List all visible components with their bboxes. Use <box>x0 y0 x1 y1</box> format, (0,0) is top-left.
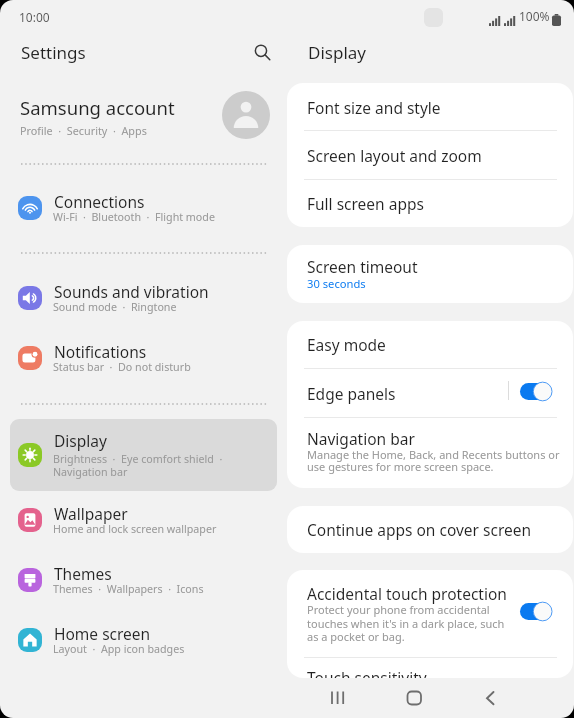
staticText: Wi-Fi · Bluetooth · Flight mode <box>53 210 215 225</box>
button[interactable]: Easy mode <box>287 321 573 368</box>
staticText: Settings <box>21 41 86 64</box>
staticText: Touch sensitivity <box>307 667 427 678</box>
staticText: Accidental touch protection <box>307 583 507 604</box>
button[interactable]: Font size and style <box>287 83 573 131</box>
staticText: Home screen <box>54 623 151 644</box>
button[interactable]: Search <box>244 34 280 70</box>
button[interactable]: Screen layout and zoom <box>287 131 573 179</box>
staticText: Display <box>308 41 366 64</box>
staticText: Full screen apps <box>307 193 424 214</box>
button[interactable]: Touch sensitivity <box>287 657 573 678</box>
staticText: Protect your phone from accidental touch… <box>307 602 505 644</box>
button[interactable]: Notifications <box>10 334 277 383</box>
staticText: Brightness · Eye comfort shield · Naviga… <box>53 452 223 479</box>
staticText: Screen timeout <box>307 256 418 277</box>
button[interactable]: Screen timeout <box>287 245 573 303</box>
button[interactable]: Accidental touch protection <box>287 570 573 657</box>
staticText: Sound mode · Ringtone <box>53 300 177 315</box>
button[interactable]: Themes <box>10 556 277 605</box>
button[interactable]: Display <box>10 419 277 491</box>
staticText: Wallpaper <box>54 503 128 524</box>
staticText: 30 seconds <box>307 276 366 291</box>
staticText: Navigation bar <box>307 428 415 449</box>
staticText: Status bar · Do not disturb <box>53 360 191 375</box>
staticText: Font size and style <box>307 97 441 118</box>
button[interactable]: Toggle <box>520 603 551 620</box>
staticText: 10:00 <box>19 9 50 25</box>
button[interactable]: Samsung account <box>10 85 277 145</box>
button[interactable]: Back <box>468 676 512 718</box>
staticText: Profile · Security · Apps <box>20 123 147 138</box>
staticText: Layout · App icon badges <box>53 642 185 657</box>
staticText: Easy mode <box>307 334 386 355</box>
staticText: Sounds and vibration <box>54 281 209 302</box>
button[interactable]: Navigation bar <box>287 417 573 488</box>
button[interactable]: Edge panels <box>287 368 573 417</box>
button[interactable]: Continue apps on cover screen <box>287 506 573 553</box>
staticText: Edge panels <box>307 383 396 404</box>
staticText: Themes <box>54 563 112 584</box>
button[interactable]: Wallpaper <box>10 496 277 545</box>
button[interactable]: Home <box>392 676 436 718</box>
button[interactable]: Sounds and vibration <box>10 274 277 323</box>
staticText: Screen layout and zoom <box>307 145 482 166</box>
staticText: Manage the Home, Back, and Recents butto… <box>307 447 560 474</box>
staticText: Samsung account <box>20 95 175 120</box>
button[interactable]: Home screen <box>10 616 277 665</box>
staticText: Connections <box>54 191 145 212</box>
button[interactable]: Recents <box>316 676 360 718</box>
staticText: Notifications <box>54 341 147 362</box>
staticText: Themes · Wallpapers · Icons <box>53 582 204 597</box>
staticText: Display <box>54 430 107 451</box>
button[interactable]: Toggle <box>520 383 551 400</box>
button[interactable]: Connections <box>10 184 277 233</box>
staticText: Home and lock screen wallpaper <box>53 522 217 537</box>
staticText: 100% <box>519 8 550 24</box>
button[interactable]: Full screen apps <box>287 179 573 227</box>
staticText: Continue apps on cover screen <box>307 519 532 540</box>
